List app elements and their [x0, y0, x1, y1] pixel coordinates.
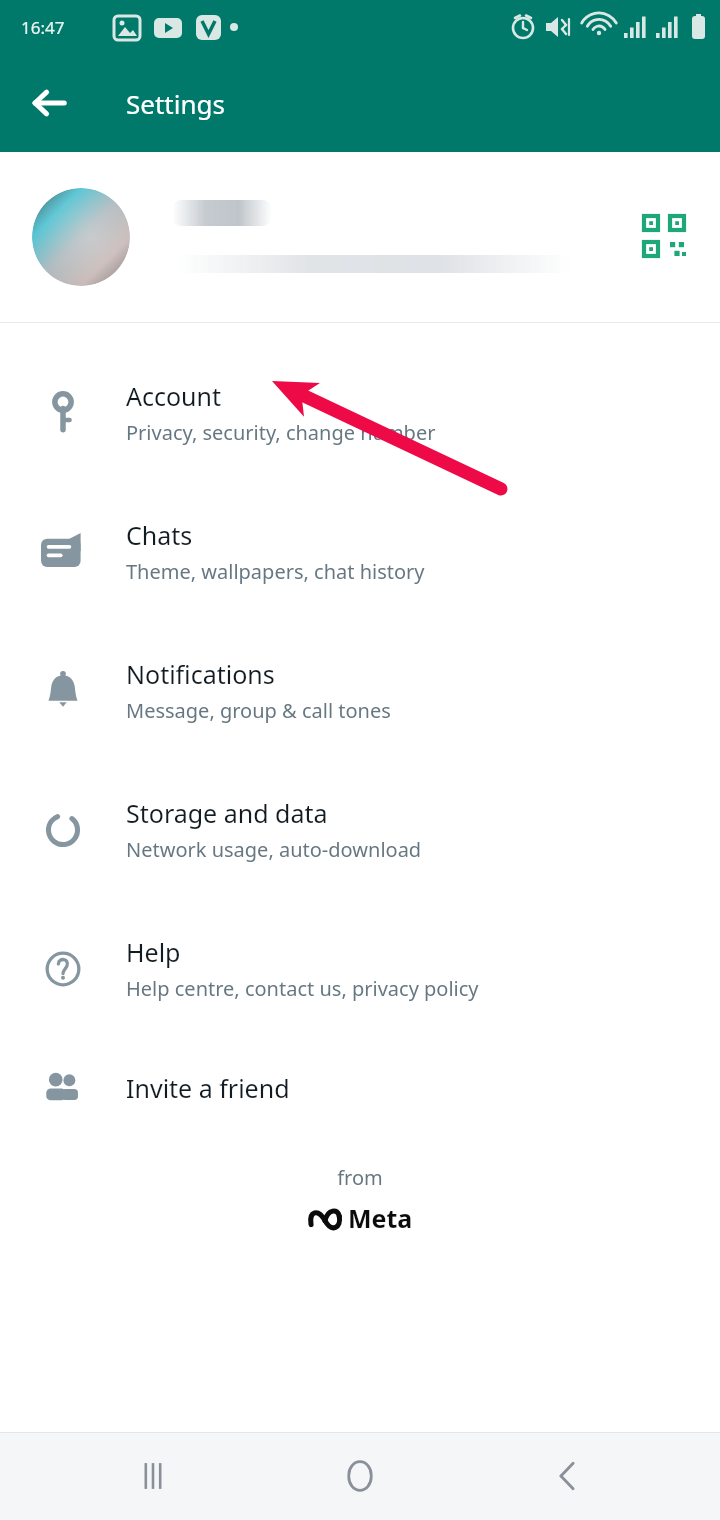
- button[interactable]: Chats: [0, 482, 720, 621]
- staticText: Theme, wallpapers, chat history: [126, 558, 425, 585]
- button[interactable]: QR code: [0, 152, 720, 322]
- button[interactable]: Back: [513, 1432, 623, 1520]
- button[interactable]: Back: [14, 67, 86, 139]
- staticText: Help centre, contact us, privacy policy: [126, 975, 479, 1002]
- staticText: 16:47: [21, 16, 65, 39]
- button[interactable]: Invite a friend: [0, 1038, 720, 1138]
- staticText: Invite a friend: [126, 1071, 290, 1105]
- staticText: Meta: [348, 1201, 413, 1235]
- staticText: Privacy, security, change number: [126, 419, 436, 446]
- staticText: Chats: [126, 518, 193, 552]
- button[interactable]: Storage and data: [0, 760, 720, 899]
- button[interactable]: Help: [0, 899, 720, 1038]
- button[interactable]: Home: [305, 1432, 415, 1520]
- staticText: Account: [126, 379, 222, 413]
- button[interactable]: Recent apps: [98, 1432, 208, 1520]
- staticText: Settings: [126, 86, 225, 121]
- staticText: from: [337, 1164, 383, 1191]
- staticText: Message, group & call tones: [126, 697, 391, 724]
- staticText: Help: [126, 935, 181, 969]
- button[interactable]: Notifications: [0, 621, 720, 760]
- staticText: Storage and data: [126, 796, 328, 830]
- staticText: Network usage, auto-download: [126, 836, 422, 863]
- button[interactable]: QR code: [630, 202, 700, 272]
- staticText: Notifications: [126, 657, 275, 691]
- button[interactable]: Account: [0, 343, 720, 482]
